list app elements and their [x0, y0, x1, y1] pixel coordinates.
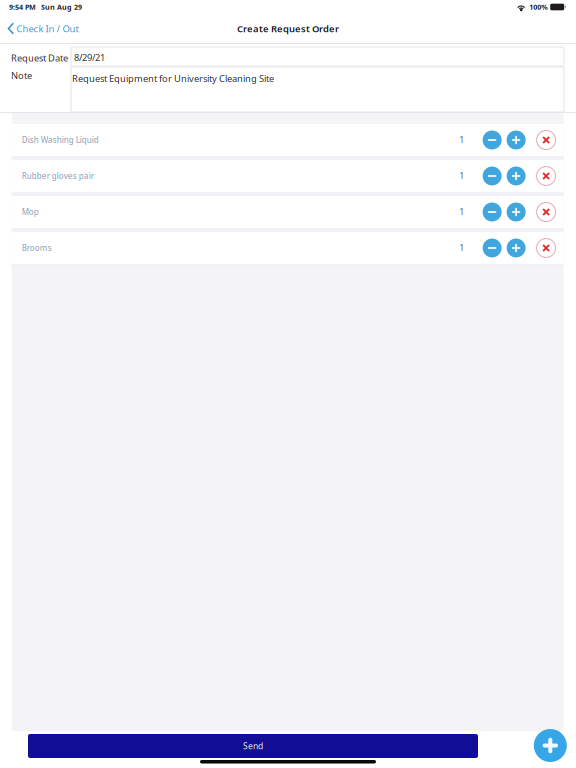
button[interactable]: Decrease quantity — [482, 165, 503, 186]
staticText: 100% — [529, 2, 547, 12]
staticText: Send — [243, 740, 263, 752]
button[interactable]: Remove item — [536, 201, 557, 222]
button[interactable]: Send — [28, 734, 478, 758]
staticText: Brooms — [22, 243, 52, 253]
button[interactable]: Decrease quantity — [482, 201, 503, 222]
staticText: Request Equipment for University Cleanin… — [72, 72, 274, 85]
staticText: Dish Washing Liquid — [22, 135, 99, 145]
staticText: Check In / Out — [16, 22, 78, 35]
button[interactable]: Remove item — [536, 237, 557, 258]
staticText: Request Date — [11, 52, 68, 64]
staticText: 1 — [460, 135, 465, 145]
staticText: Rubber gloves pair — [22, 171, 94, 181]
button[interactable]: Increase quantity — [506, 129, 527, 150]
button[interactable]: Check In / Out — [0, 14, 84, 43]
staticText: 1 — [460, 171, 465, 181]
staticText: 9:54 PM — [9, 2, 36, 12]
staticText: Sun Aug 29 — [41, 2, 82, 12]
staticText: Note — [11, 69, 32, 82]
staticText: Mop — [22, 207, 39, 217]
staticText: Create Request Order — [237, 22, 339, 35]
button[interactable]: Remove item — [536, 165, 557, 186]
button[interactable]: Decrease quantity — [482, 129, 503, 150]
button[interactable]: Remove item — [536, 129, 557, 150]
button[interactable]: Add item — [534, 729, 567, 762]
button[interactable]: Increase quantity — [506, 165, 527, 186]
staticText: 1 — [460, 243, 465, 253]
staticText: 1 — [460, 207, 465, 217]
staticText: 8/29/21 — [74, 51, 105, 64]
button[interactable]: Increase quantity — [506, 201, 527, 222]
button[interactable]: Decrease quantity — [482, 237, 503, 258]
button[interactable]: Increase quantity — [506, 237, 527, 258]
